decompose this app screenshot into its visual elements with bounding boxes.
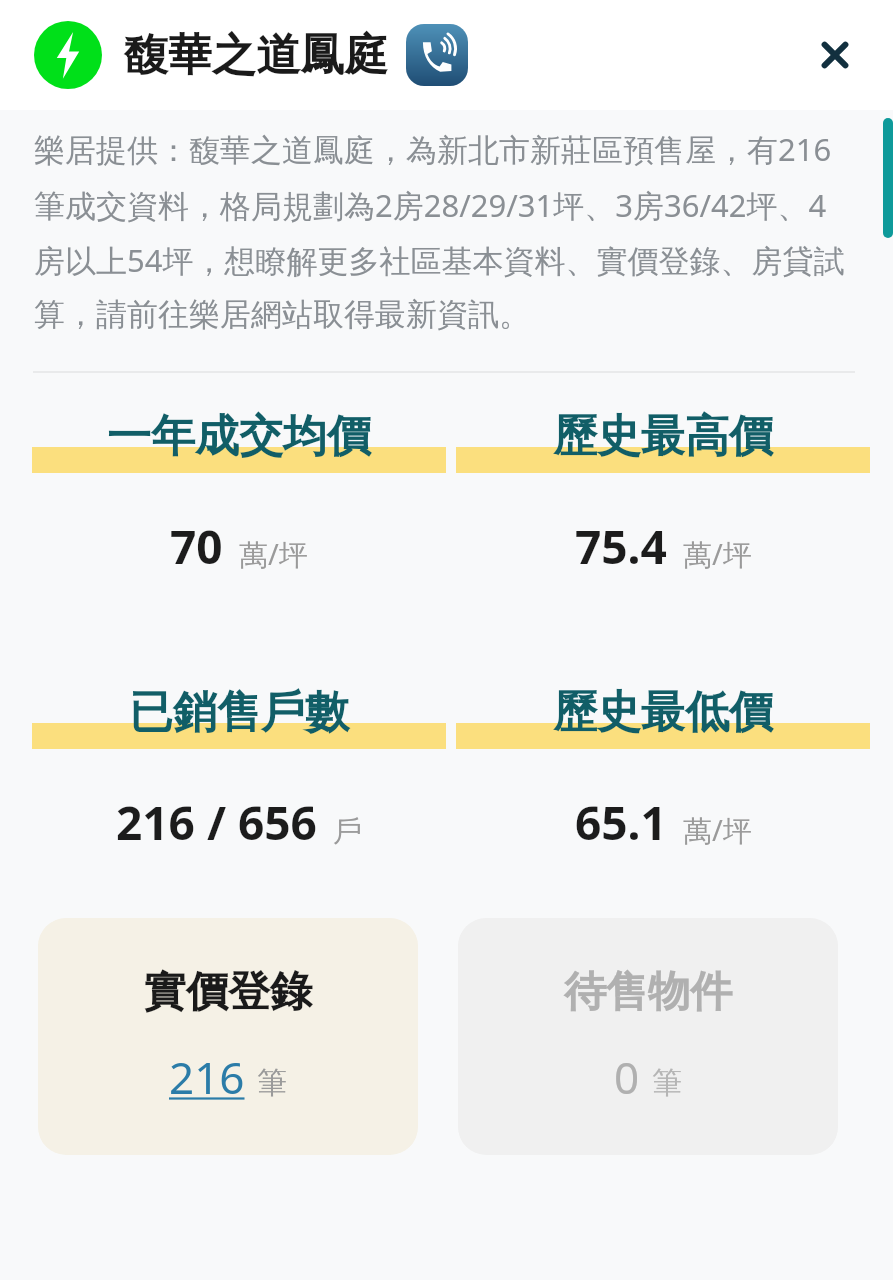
staticText: 樂居提供：馥華之道鳳庭，為新北市新莊區預售屋，有216筆成交資料，格局規劃為2房… <box>34 128 849 334</box>
staticText: 萬/坪 <box>239 534 308 574</box>
staticText: 0 <box>614 1047 640 1107</box>
staticText: 75.4 <box>575 515 667 578</box>
button[interactable]: 歷史最高價 <box>456 409 870 578</box>
staticText: 萬/坪 <box>683 810 752 850</box>
staticText: 馥華之道鳳庭 <box>124 28 388 83</box>
button[interactable]: Call <box>404 22 470 88</box>
staticText: 實價登錄 <box>144 966 312 1019</box>
staticText: 歷史最高價 <box>553 409 773 464</box>
staticText: 筆 <box>652 1064 682 1102</box>
staticText: 216 / 656 <box>116 791 317 854</box>
staticText: 待售物件 <box>564 966 732 1019</box>
staticText: 已銷售戶數 <box>129 685 349 740</box>
staticText: 歷史最低價 <box>553 685 773 740</box>
staticText: 萬/坪 <box>683 534 752 574</box>
staticText: 65.1 <box>575 791 667 854</box>
button[interactable]: 待售物件 <box>458 918 838 1155</box>
button[interactable]: 實價登錄 <box>38 918 418 1155</box>
staticText: 一年成交均價 <box>107 409 371 464</box>
staticText: 戶 <box>333 813 362 850</box>
button[interactable]: 歷史最低價 <box>456 685 870 854</box>
staticText: 216 <box>169 1047 245 1107</box>
button[interactable]: 一年成交均價 <box>32 409 446 578</box>
staticText: 70 <box>170 515 223 578</box>
button[interactable]: Close <box>807 27 863 83</box>
staticText: 筆 <box>257 1064 287 1102</box>
button[interactable]: 已銷售戶數 <box>32 685 446 854</box>
